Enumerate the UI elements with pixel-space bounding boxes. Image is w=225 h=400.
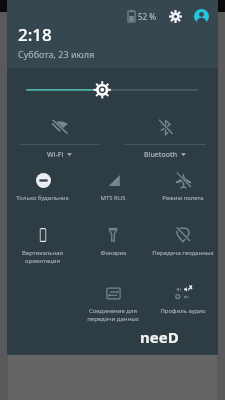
staticText: Фонарик xyxy=(100,249,127,257)
button[interactable]: Settings xyxy=(166,7,184,25)
button[interactable]: Wi-Fi xyxy=(7,110,112,164)
staticText: Профиль аудио xyxy=(160,307,206,315)
button[interactable]: Bluetooth xyxy=(112,110,218,164)
staticText: Соединение для передачи данных xyxy=(87,307,139,323)
staticText: Вертикальная ориентация xyxy=(22,249,63,265)
button[interactable]: User profile xyxy=(192,7,210,25)
staticText: Bluetooth xyxy=(144,150,178,160)
button[interactable]: Вертикальная ориентация xyxy=(7,219,78,277)
button[interactable]: Профиль аудио xyxy=(148,277,218,335)
button[interactable]: Фонарик xyxy=(78,219,148,277)
staticText: MTS RUS xyxy=(100,194,126,202)
staticText: Передача геоданных xyxy=(152,249,214,257)
staticText: Wi-Fi xyxy=(47,150,64,160)
button[interactable]: Передача геоданных xyxy=(148,219,218,277)
staticText: neeD xyxy=(140,327,179,347)
staticText: Суббота, 23 июля xyxy=(18,48,95,60)
staticText: Только будильник xyxy=(16,194,69,202)
button[interactable]: Соединение для передачи данных xyxy=(78,277,148,335)
staticText: Режим полета xyxy=(162,194,204,202)
button[interactable]: Только будильник xyxy=(7,164,78,219)
button[interactable]: Режим полета xyxy=(148,164,218,219)
button[interactable]: Brightness xyxy=(7,68,218,110)
button[interactable]: MTS RUS xyxy=(78,164,148,219)
staticText: 52 % xyxy=(138,11,157,22)
staticText: 2:18 xyxy=(18,23,52,46)
